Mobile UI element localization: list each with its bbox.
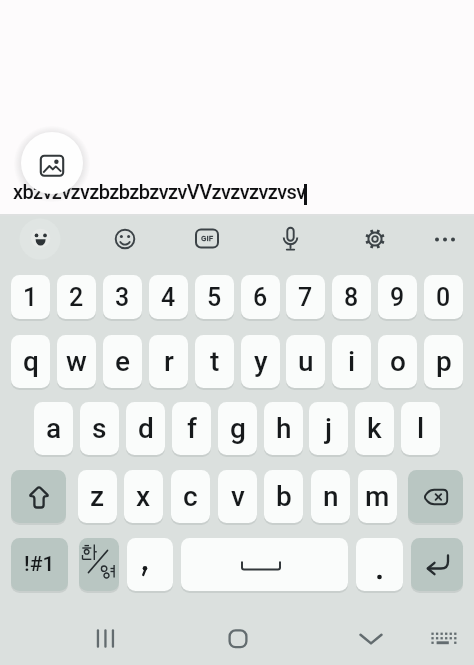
button[interactable]: w xyxy=(57,335,96,388)
button[interactable]: r xyxy=(149,335,188,388)
staticText: GIF xyxy=(201,234,214,243)
button[interactable] xyxy=(19,218,61,260)
button[interactable] xyxy=(114,228,136,250)
button[interactable] xyxy=(363,227,387,251)
staticText: xbzvzvzvzbzbzbzvzvVVzvzvzvzvsv xyxy=(13,180,306,203)
button[interactable] xyxy=(228,629,248,649)
staticText: z xyxy=(90,480,105,513)
staticText: 9 xyxy=(390,283,405,312)
button[interactable] xyxy=(280,227,301,252)
button[interactable]: 7 xyxy=(286,275,325,319)
staticText: a xyxy=(46,412,62,445)
staticText: 3 xyxy=(115,283,130,312)
staticText: 7 xyxy=(298,283,313,312)
button[interactable] xyxy=(408,470,463,523)
staticText: y xyxy=(254,345,268,378)
staticText: u xyxy=(298,345,314,378)
staticText: m xyxy=(365,480,390,513)
button[interactable]: GIF xyxy=(195,228,219,249)
button[interactable]: q xyxy=(11,335,50,388)
staticText: r xyxy=(164,345,174,378)
button[interactable]: !#1 xyxy=(11,538,68,591)
button[interactable]: u xyxy=(286,335,325,388)
staticText: 5 xyxy=(207,283,222,312)
button[interactable]: 8 xyxy=(332,275,371,319)
button[interactable]: 9 xyxy=(378,275,417,319)
staticText: f xyxy=(187,412,197,445)
button[interactable] xyxy=(374,572,385,583)
button[interactable]: x xyxy=(124,470,163,523)
staticText: 4 xyxy=(161,283,176,312)
button[interactable] xyxy=(359,633,383,646)
button[interactable]: g xyxy=(218,402,257,455)
button[interactable] xyxy=(431,632,457,647)
button[interactable]: 3 xyxy=(103,275,142,319)
button[interactable]: o xyxy=(378,335,417,388)
button[interactable]: 2 xyxy=(57,275,96,319)
staticText: k xyxy=(367,412,382,445)
staticText: n xyxy=(323,480,339,513)
button[interactable]: i xyxy=(332,335,371,388)
button[interactable]: 4 xyxy=(149,275,188,319)
button[interactable] xyxy=(181,538,348,591)
button[interactable]: s xyxy=(80,402,119,455)
button[interactable]: v xyxy=(218,470,257,523)
button[interactable] xyxy=(79,538,119,591)
button[interactable] xyxy=(411,538,463,591)
staticText: q xyxy=(23,345,39,378)
button[interactable]: m xyxy=(358,470,397,523)
staticText: 0 xyxy=(436,283,451,312)
button[interactable]: 1 xyxy=(11,275,50,319)
button[interactable]: c xyxy=(171,470,210,523)
staticText: i xyxy=(348,345,356,378)
button[interactable] xyxy=(11,470,66,523)
staticText: p xyxy=(436,345,452,378)
staticText: t xyxy=(210,345,220,378)
staticText: g xyxy=(230,412,246,445)
button[interactable]: p xyxy=(424,335,463,388)
staticText: e xyxy=(115,345,131,378)
button[interactable] xyxy=(356,538,403,591)
button[interactable]: 5 xyxy=(195,275,234,319)
staticText: o xyxy=(390,345,406,378)
button[interactable]: t xyxy=(195,335,234,388)
button[interactable]: d xyxy=(126,402,165,455)
button[interactable] xyxy=(96,629,116,648)
staticText: d xyxy=(138,412,154,445)
button[interactable]: b xyxy=(264,470,303,523)
staticText: s xyxy=(92,412,107,445)
button[interactable]: h xyxy=(264,402,303,455)
button[interactable]: a xyxy=(34,402,73,455)
staticText: w xyxy=(66,345,87,378)
staticText: x xyxy=(136,480,151,513)
button[interactable]: 6 xyxy=(241,275,280,319)
button[interactable]: k xyxy=(355,402,394,455)
button[interactable]: j xyxy=(309,402,348,455)
staticText: 2 xyxy=(69,283,84,312)
button[interactable]: y xyxy=(241,335,280,388)
staticText: l xyxy=(417,412,425,445)
button[interactable] xyxy=(139,563,151,578)
button[interactable]: e xyxy=(103,335,142,388)
staticText: h xyxy=(276,412,292,445)
button[interactable] xyxy=(434,236,456,243)
button[interactable] xyxy=(21,132,83,194)
staticText: c xyxy=(183,480,198,513)
button[interactable]: f xyxy=(172,402,211,455)
button[interactable] xyxy=(127,538,173,591)
button[interactable]: z xyxy=(78,470,117,523)
staticText: 8 xyxy=(344,283,359,312)
staticText: b xyxy=(276,480,292,513)
staticText: !#1 xyxy=(24,552,55,577)
button[interactable]: l xyxy=(401,402,440,455)
staticText: 6 xyxy=(253,283,268,312)
staticText: v xyxy=(231,480,245,513)
button[interactable]: 0 xyxy=(424,275,463,319)
staticText: 1 xyxy=(23,283,38,312)
button[interactable]: n xyxy=(311,470,350,523)
staticText: j xyxy=(325,412,333,445)
